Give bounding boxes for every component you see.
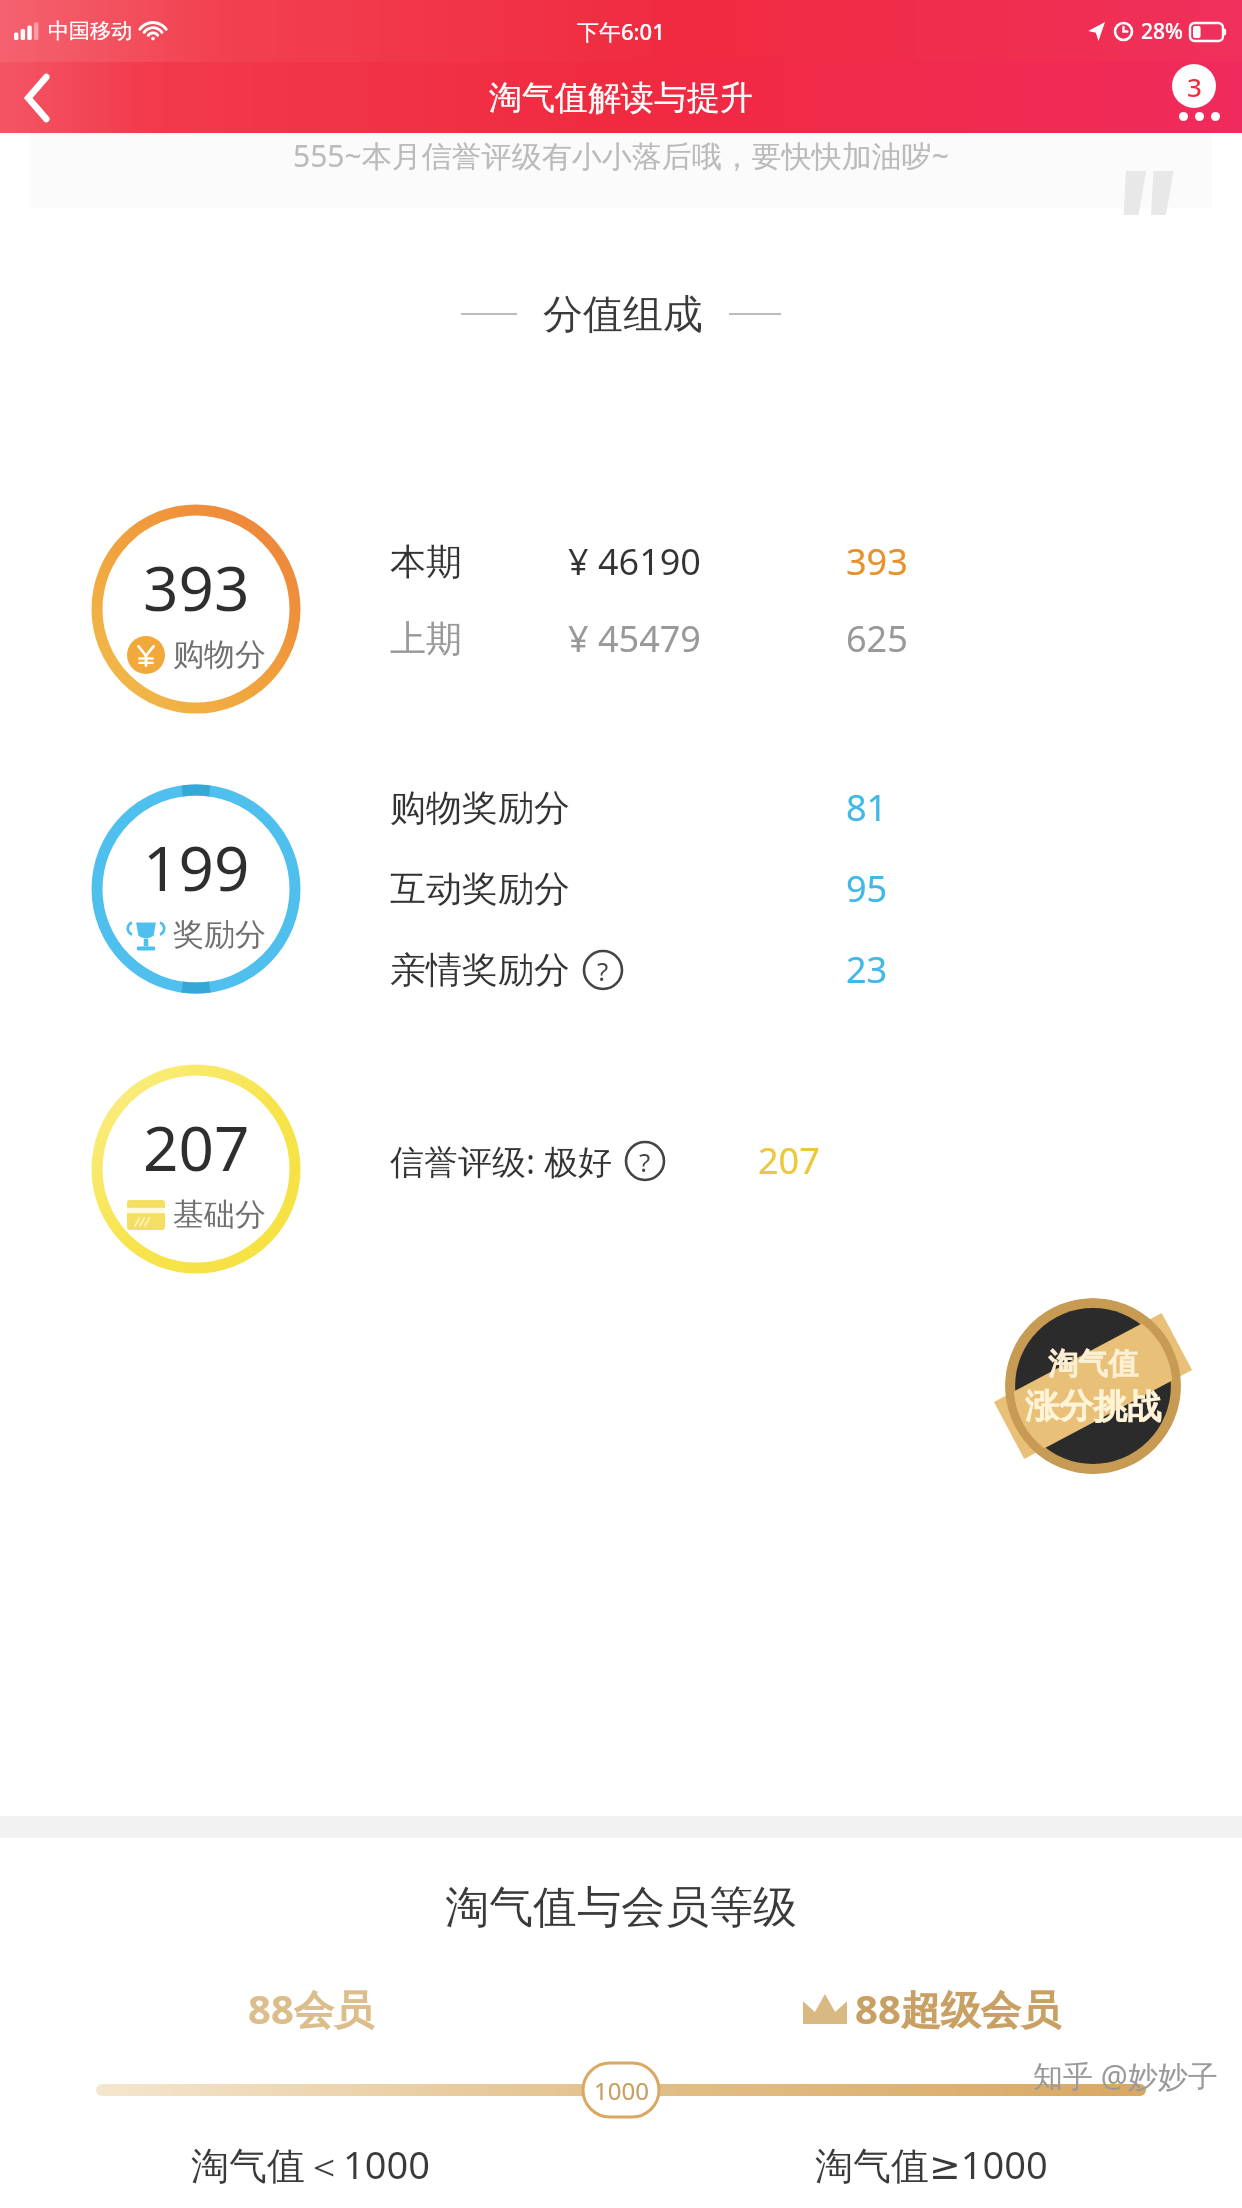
staticText: 207: [143, 1105, 250, 1189]
button[interactable]: More options: [1132, 62, 1242, 133]
staticText: 95: [846, 864, 888, 913]
staticText: 393: [143, 545, 250, 629]
staticText: 625: [846, 614, 908, 663]
staticText: ¥ 45479: [568, 614, 701, 663]
staticText: 3: [1187, 69, 1202, 104]
staticText: 中国移动: [48, 18, 132, 44]
staticText: 购物分: [173, 635, 266, 674]
staticText: 涨分挑战: [1025, 1385, 1161, 1428]
staticText: 下午6:01: [577, 16, 665, 46]
button[interactable]: Back: [0, 62, 76, 133]
staticText: 互动奖励分: [390, 866, 570, 911]
staticText: 基础分: [173, 1195, 266, 1234]
staticText: 81: [846, 783, 888, 832]
staticText: 555~本月信誉评级有小小落后哦，要快快加油哕~: [293, 135, 949, 176]
button[interactable]: 帮助: [624, 1140, 666, 1182]
staticText: 淘气值≥1000: [815, 2138, 1048, 2190]
staticText: 购物奖励分: [390, 785, 570, 830]
staticText: ?: [639, 1144, 651, 1179]
button[interactable]: 淘气值涨分挑战: [998, 1291, 1188, 1481]
button[interactable]: 199: [91, 784, 301, 994]
staticText: 上期: [390, 616, 462, 661]
button[interactable]: 393: [91, 504, 301, 714]
staticText: 淘气值与会员等级: [0, 1880, 1242, 1935]
button[interactable]: 帮助: [582, 949, 624, 991]
staticText: 淘气值: [1048, 1345, 1138, 1383]
staticText: 奖励分: [173, 915, 266, 954]
staticText: 207: [758, 1136, 820, 1185]
staticText: 知乎 @妙妙子: [1033, 2055, 1218, 2096]
staticText: 88超级会员: [855, 1981, 1061, 2036]
staticText: 本期: [390, 539, 462, 584]
staticText: 393: [846, 537, 908, 586]
staticText: 淘气值解读与提升: [489, 77, 753, 119]
staticText: 1000: [594, 2074, 649, 2107]
staticText: 28%: [1141, 17, 1183, 46]
staticText: 淘气值＜1000: [191, 2138, 430, 2190]
staticText: 亲情奖励分: [390, 947, 570, 992]
staticText: 23: [846, 945, 888, 994]
staticText: 199: [143, 825, 250, 909]
staticText: ?: [597, 953, 609, 988]
staticText: 88会员: [248, 1981, 374, 2036]
staticText: 信誉评级: 极好: [390, 1138, 612, 1184]
staticText: ¥ 46190: [568, 537, 701, 586]
staticText: 分值组成: [543, 289, 703, 339]
button[interactable]: 207: [91, 1064, 301, 1274]
